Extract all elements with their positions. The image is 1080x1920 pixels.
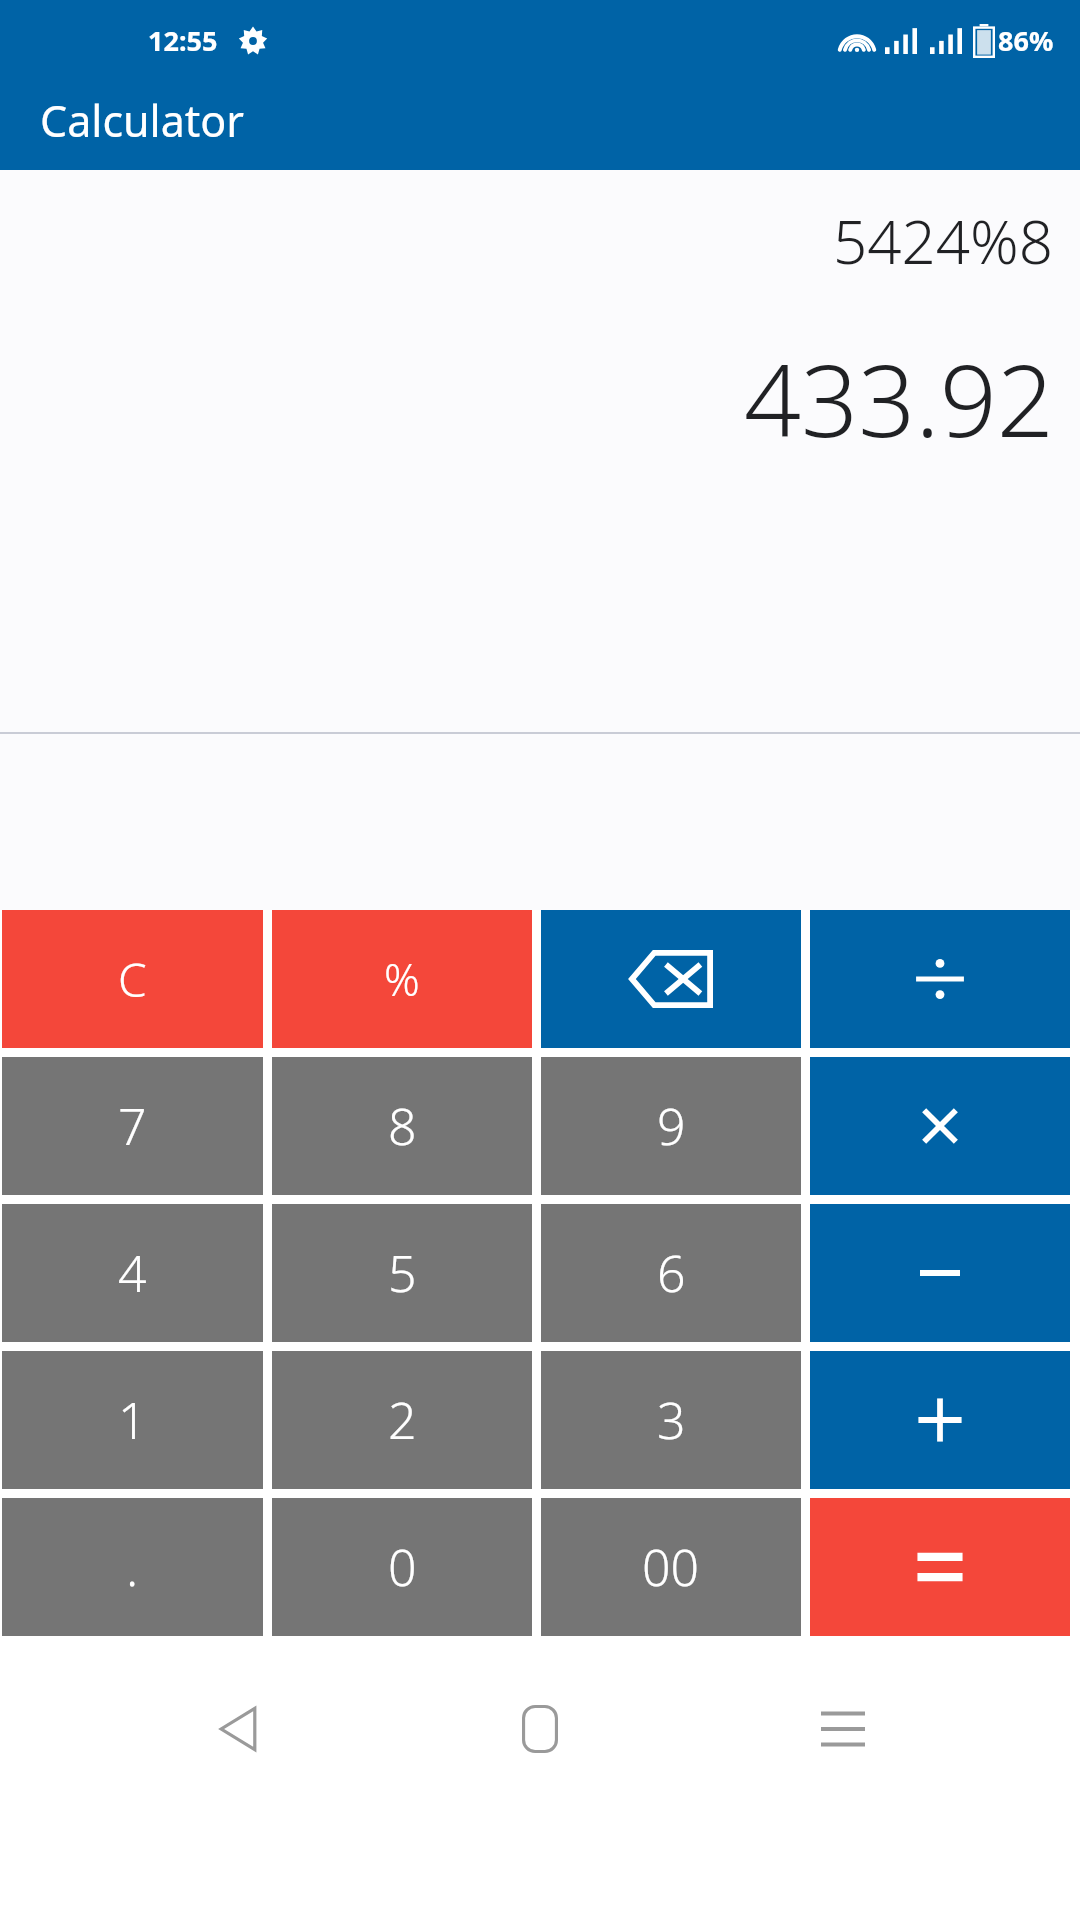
staticText: 12:55 bbox=[148, 22, 218, 59]
staticText: 433.92 bbox=[744, 330, 1054, 466]
button[interactable]: Home bbox=[475, 1684, 605, 1774]
staticText: 5424%8 bbox=[833, 200, 1054, 282]
staticText: 1 bbox=[118, 1386, 147, 1454]
button[interactable]: Equals bbox=[810, 1498, 1070, 1636]
button[interactable]: 1 bbox=[2, 1351, 263, 1489]
staticText: 86% bbox=[998, 22, 1054, 59]
button[interactable]: 0 bbox=[272, 1498, 532, 1636]
staticText: . bbox=[126, 1533, 139, 1601]
staticText: 00 bbox=[642, 1533, 700, 1601]
button[interactable]: 00 bbox=[541, 1498, 801, 1636]
button[interactable]: Backspace bbox=[541, 910, 801, 1048]
staticText: Calculator bbox=[40, 91, 245, 150]
staticText: 7 bbox=[118, 1092, 147, 1160]
button[interactable]: 3 bbox=[541, 1351, 801, 1489]
staticText: 6 bbox=[657, 1239, 686, 1307]
button[interactable]: Back bbox=[173, 1684, 303, 1774]
button[interactable]: Recent apps bbox=[778, 1684, 908, 1774]
staticText: 3 bbox=[657, 1386, 686, 1454]
button[interactable]: 5 bbox=[272, 1204, 532, 1342]
button[interactable]: Divide bbox=[810, 910, 1070, 1048]
button[interactable]: Multiply bbox=[810, 1057, 1070, 1195]
button[interactable]: 6 bbox=[541, 1204, 801, 1342]
button[interactable]: 9 bbox=[541, 1057, 801, 1195]
button[interactable]: 4 bbox=[2, 1204, 263, 1342]
staticText: C bbox=[118, 948, 147, 1011]
staticText: 4 bbox=[118, 1239, 147, 1307]
button[interactable]: 8 bbox=[272, 1057, 532, 1195]
button[interactable]: Plus bbox=[810, 1351, 1070, 1489]
staticText: 2 bbox=[388, 1386, 417, 1454]
staticText: 8 bbox=[388, 1092, 417, 1160]
button[interactable]: 2 bbox=[272, 1351, 532, 1489]
button[interactable]: Minus bbox=[810, 1204, 1070, 1342]
button[interactable]: 7 bbox=[2, 1057, 263, 1195]
staticText: 5 bbox=[388, 1239, 417, 1307]
staticText: 9 bbox=[657, 1092, 686, 1160]
button[interactable]: C bbox=[2, 910, 263, 1048]
button[interactable]: . bbox=[2, 1498, 263, 1636]
staticText: 0 bbox=[388, 1533, 417, 1601]
staticText: % bbox=[384, 949, 420, 1009]
button[interactable]: % bbox=[272, 910, 532, 1048]
